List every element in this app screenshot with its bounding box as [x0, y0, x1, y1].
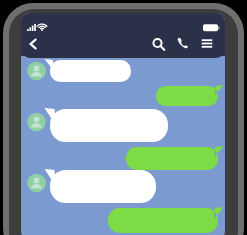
- button[interactable]: Message from contact: [27, 109, 168, 142]
- button[interactable]: Menu: [197, 34, 219, 54]
- button[interactable]: Your message: [156, 86, 218, 106]
- button[interactable]: Search: [147, 34, 169, 54]
- button[interactable]: Your message: [108, 208, 218, 232]
- button[interactable]: Your message: [126, 147, 218, 170]
- button[interactable]: Back: [24, 34, 46, 54]
- button[interactable]: Call: [172, 34, 194, 54]
- button[interactable]: Message from contact: [27, 59, 131, 83]
- button[interactable]: Message from contact: [27, 170, 156, 203]
